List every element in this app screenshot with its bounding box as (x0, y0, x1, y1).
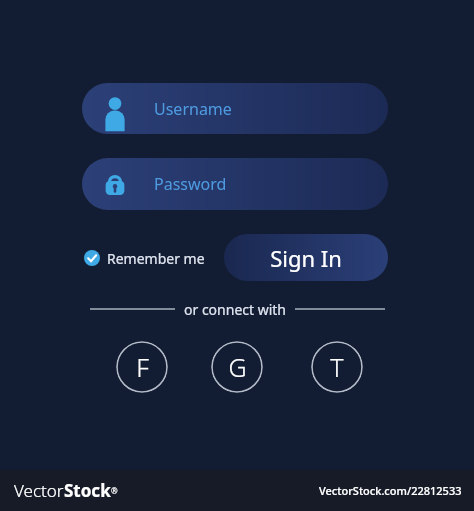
button[interactable]: Sign In (224, 234, 388, 281)
staticText: Remember me (107, 249, 205, 268)
button[interactable]: Remember me (84, 243, 205, 273)
staticText: Stock (64, 479, 111, 502)
button[interactable]: Password (82, 158, 388, 210)
staticText: G (228, 350, 247, 384)
staticText: ® (111, 485, 118, 496)
staticText: Vector (14, 479, 64, 502)
staticText: Password (154, 173, 227, 195)
staticText: Username (154, 98, 232, 120)
button[interactable]: Sign in with Google (211, 341, 263, 393)
staticText: T (330, 350, 344, 384)
staticText: F (136, 350, 149, 384)
staticText: Sign In (270, 243, 342, 273)
button[interactable]: Username (82, 83, 388, 134)
button[interactable]: Sign in with Facebook (116, 341, 168, 393)
staticText: VectorStock.com/22812533 (319, 483, 462, 498)
staticText: or connect with (184, 300, 287, 319)
button[interactable]: Sign in with Twitter (311, 341, 363, 393)
